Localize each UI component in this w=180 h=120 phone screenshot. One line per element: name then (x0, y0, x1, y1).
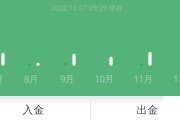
staticText: 出金 (136, 103, 158, 116)
staticText: 11月 (133, 73, 152, 85)
button[interactable]: 出金 (103, 98, 180, 120)
staticText: 8月 (24, 73, 38, 85)
staticText: 2022.12.07 09:29 現在 (51, 4, 123, 12)
staticText: 12月 (173, 73, 180, 85)
staticText: 10月 (94, 73, 113, 85)
button[interactable]: 入金 (0, 98, 77, 120)
staticText: 7月 (0, 73, 3, 85)
staticText: 入金 (22, 103, 44, 116)
staticText: 9月 (60, 73, 74, 85)
